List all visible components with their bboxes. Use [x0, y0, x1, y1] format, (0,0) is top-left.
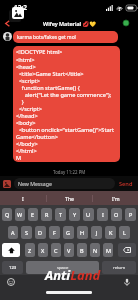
staticText: <!DOCTYPE html> <html> <head> <title>Gam…	[16, 48, 120, 161]
staticText: The	[65, 195, 75, 202]
staticText: F	[53, 229, 56, 236]
button[interactable]: F	[49, 226, 60, 239]
staticText: H	[80, 229, 85, 236]
staticText: Today 11:22 PM	[53, 169, 86, 175]
button[interactable]: M	[103, 243, 113, 257]
button[interactable]: D	[35, 226, 46, 239]
staticText: N	[93, 247, 98, 254]
staticText: P	[129, 211, 133, 218]
button[interactable]: Shift	[2, 243, 20, 257]
staticText: S	[25, 229, 29, 236]
staticText: X	[41, 247, 45, 254]
button[interactable]: J	[91, 226, 102, 239]
staticText: E	[31, 211, 35, 218]
button[interactable]: A	[8, 226, 18, 239]
button[interactable]: I	[97, 208, 108, 221]
staticText: G	[66, 229, 71, 236]
button[interactable]: Q	[2, 208, 12, 221]
staticText: Q	[5, 211, 10, 218]
button[interactable]: U	[83, 208, 94, 221]
button[interactable]: W	[15, 208, 25, 221]
staticText: I	[22, 195, 24, 202]
button[interactable]: G	[63, 226, 74, 239]
staticText: Wifey Material 💋💛	[43, 20, 96, 27]
button[interactable]: Z	[25, 243, 35, 257]
staticText: K	[109, 229, 113, 236]
button[interactable]: I	[0, 191, 46, 205]
button[interactable]: I'm	[93, 191, 138, 205]
button[interactable]: return	[102, 261, 136, 274]
button[interactable]: The	[47, 191, 92, 205]
staticText: T	[59, 211, 63, 218]
button[interactable]: 123	[2, 261, 23, 274]
staticText: R	[45, 211, 49, 218]
button[interactable]: Backspace	[118, 243, 136, 257]
staticText: karma bots/fakes get mol	[17, 34, 76, 41]
staticText: space	[57, 265, 69, 271]
button[interactable]: V	[64, 243, 74, 257]
button[interactable]: Y	[69, 208, 80, 221]
staticText: I	[102, 211, 104, 218]
staticText: A	[11, 229, 15, 236]
staticText: return	[113, 265, 126, 271]
button[interactable]: Emoji	[7, 278, 15, 286]
staticText: Z	[28, 247, 32, 254]
button[interactable]: K	[105, 226, 116, 239]
button[interactable]: O	[111, 208, 122, 221]
button[interactable]: N	[90, 243, 100, 257]
staticText: B	[80, 247, 84, 254]
button[interactable]: Avatar	[3, 32, 12, 41]
button[interactable]: karma bots/fakes get mol	[13, 31, 118, 43]
staticText: L	[123, 229, 126, 236]
staticText: 123	[9, 265, 17, 271]
button[interactable]: Send	[117, 178, 135, 190]
button[interactable]: P	[125, 208, 136, 221]
button[interactable]: space	[26, 261, 99, 274]
staticText: 12:2	[14, 3, 27, 12]
button[interactable]: Profile	[114, 16, 138, 30]
staticText: W	[17, 211, 23, 218]
staticText: V	[67, 247, 71, 254]
button[interactable]: H	[77, 226, 88, 239]
button[interactable]: L	[119, 226, 130, 239]
button[interactable]: Attach image	[3, 180, 11, 188]
staticText: Y	[73, 211, 77, 218]
button[interactable]: New Message	[14, 178, 115, 189]
button[interactable]: E	[28, 208, 38, 221]
staticText: M	[106, 247, 111, 254]
staticText: Send	[119, 180, 133, 188]
staticText: I'm	[112, 195, 120, 202]
button[interactable]: Dictate	[123, 278, 131, 286]
staticText: New Message	[18, 180, 52, 187]
button[interactable]: S	[21, 226, 32, 239]
staticText: O	[114, 211, 119, 218]
button[interactable]: R	[41, 208, 52, 221]
staticText: D	[38, 229, 43, 236]
staticText: AntiLand	[45, 266, 101, 284]
staticText: U	[86, 211, 91, 218]
button[interactable]: <!DOCTYPE html> <html> <head> <title>Gam…	[13, 46, 120, 162]
button[interactable]: Back	[0, 16, 14, 30]
button[interactable]: T	[55, 208, 66, 221]
button[interactable]: B	[77, 243, 87, 257]
staticText: J	[96, 229, 98, 236]
button[interactable]: C	[51, 243, 61, 257]
button[interactable]: X	[38, 243, 48, 257]
staticText: C	[54, 247, 58, 254]
